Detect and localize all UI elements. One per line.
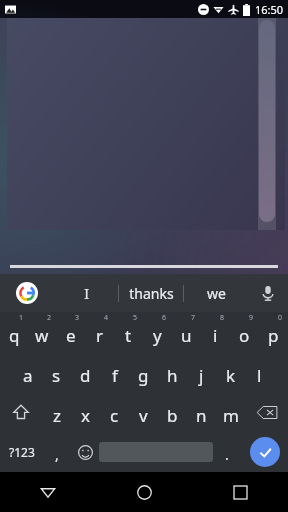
staticText: h xyxy=(167,364,178,387)
button[interactable]: Home xyxy=(96,472,192,512)
button[interactable]: s xyxy=(42,352,71,392)
staticText: 7 xyxy=(191,313,196,323)
button[interactable]: h xyxy=(158,352,187,392)
staticText: b xyxy=(167,404,178,427)
staticText: 6 xyxy=(162,313,167,323)
button[interactable]: 8 xyxy=(201,312,230,352)
staticText: 9 xyxy=(249,313,254,323)
button[interactable]: x xyxy=(71,392,100,432)
staticText: j xyxy=(199,364,204,387)
staticText: i xyxy=(213,324,218,347)
button[interactable]: j xyxy=(187,352,216,392)
button[interactable]: n xyxy=(187,392,216,432)
staticText: 0 xyxy=(278,313,283,323)
staticText: , xyxy=(55,445,59,464)
staticText: l xyxy=(257,364,262,387)
staticText: 8 xyxy=(220,313,225,323)
staticText: z xyxy=(53,404,61,427)
staticText: 5 xyxy=(133,313,138,323)
staticText: t xyxy=(125,324,132,347)
button[interactable]: 7 xyxy=(172,312,201,352)
button[interactable]: z xyxy=(42,392,71,432)
staticText: 1 xyxy=(19,313,24,323)
staticText: f xyxy=(112,364,118,387)
staticText: a xyxy=(23,364,33,387)
staticText: s xyxy=(52,364,61,387)
button[interactable]: 6 xyxy=(143,312,172,352)
staticText: 4 xyxy=(104,313,109,323)
staticText: u xyxy=(181,324,192,347)
button[interactable] xyxy=(259,20,275,222)
button[interactable]: Back xyxy=(0,472,96,512)
button[interactable]: 3 xyxy=(56,312,85,352)
button[interactable]: thanks xyxy=(119,274,183,312)
staticText: I xyxy=(84,284,89,303)
button[interactable]: m xyxy=(216,392,245,432)
staticText: g xyxy=(138,364,149,387)
staticText: e xyxy=(66,324,76,347)
button[interactable]: 0 xyxy=(259,312,288,352)
staticText: 16:50 xyxy=(255,2,284,17)
staticText: n xyxy=(196,404,207,427)
staticText: x xyxy=(81,404,90,427)
staticText: we xyxy=(207,284,226,303)
staticText: v xyxy=(139,404,148,427)
button[interactable]: Backspace xyxy=(245,392,288,432)
button[interactable]: Emoji xyxy=(71,432,99,472)
button[interactable]: g xyxy=(129,352,158,392)
button[interactable]: Recent apps xyxy=(192,472,288,512)
button[interactable]: ?123 xyxy=(0,432,43,472)
button[interactable]: I xyxy=(54,274,118,312)
staticText: . xyxy=(225,445,229,464)
staticText: 2 xyxy=(47,313,52,323)
button[interactable]: l xyxy=(245,352,274,392)
button[interactable]: d xyxy=(71,352,100,392)
staticText: thanks xyxy=(129,284,174,303)
button[interactable]: v xyxy=(129,392,158,432)
button[interactable]: c xyxy=(100,392,129,432)
button[interactable]: b xyxy=(158,392,187,432)
staticText: d xyxy=(80,364,91,387)
button[interactable]: Enter xyxy=(241,432,288,472)
staticText: q xyxy=(9,324,20,347)
button[interactable]: 9 xyxy=(230,312,259,352)
button[interactable]: k xyxy=(216,352,245,392)
button[interactable]: we xyxy=(184,274,248,312)
button[interactable]: 2 xyxy=(28,312,56,352)
button[interactable]: 5 xyxy=(114,312,143,352)
staticText: ?123 xyxy=(9,444,35,460)
staticText: r xyxy=(96,324,104,347)
button[interactable]: . xyxy=(213,432,241,472)
button[interactable]: f xyxy=(100,352,129,392)
staticText: y xyxy=(153,324,162,347)
staticText: w xyxy=(35,324,49,347)
staticText: k xyxy=(226,364,236,387)
staticText: p xyxy=(268,324,279,347)
button[interactable]: Shift xyxy=(0,392,42,432)
button[interactable]: Voice input xyxy=(248,274,288,312)
button[interactable]: a xyxy=(13,352,42,392)
button[interactable]: 1 xyxy=(0,312,28,352)
staticText: 3 xyxy=(75,313,80,323)
button[interactable]: Google xyxy=(0,274,54,312)
button[interactable]: 4 xyxy=(85,312,114,352)
staticText: m xyxy=(223,404,239,427)
staticText: o xyxy=(239,324,250,347)
staticText: c xyxy=(110,404,119,427)
button[interactable]: , xyxy=(43,432,71,472)
